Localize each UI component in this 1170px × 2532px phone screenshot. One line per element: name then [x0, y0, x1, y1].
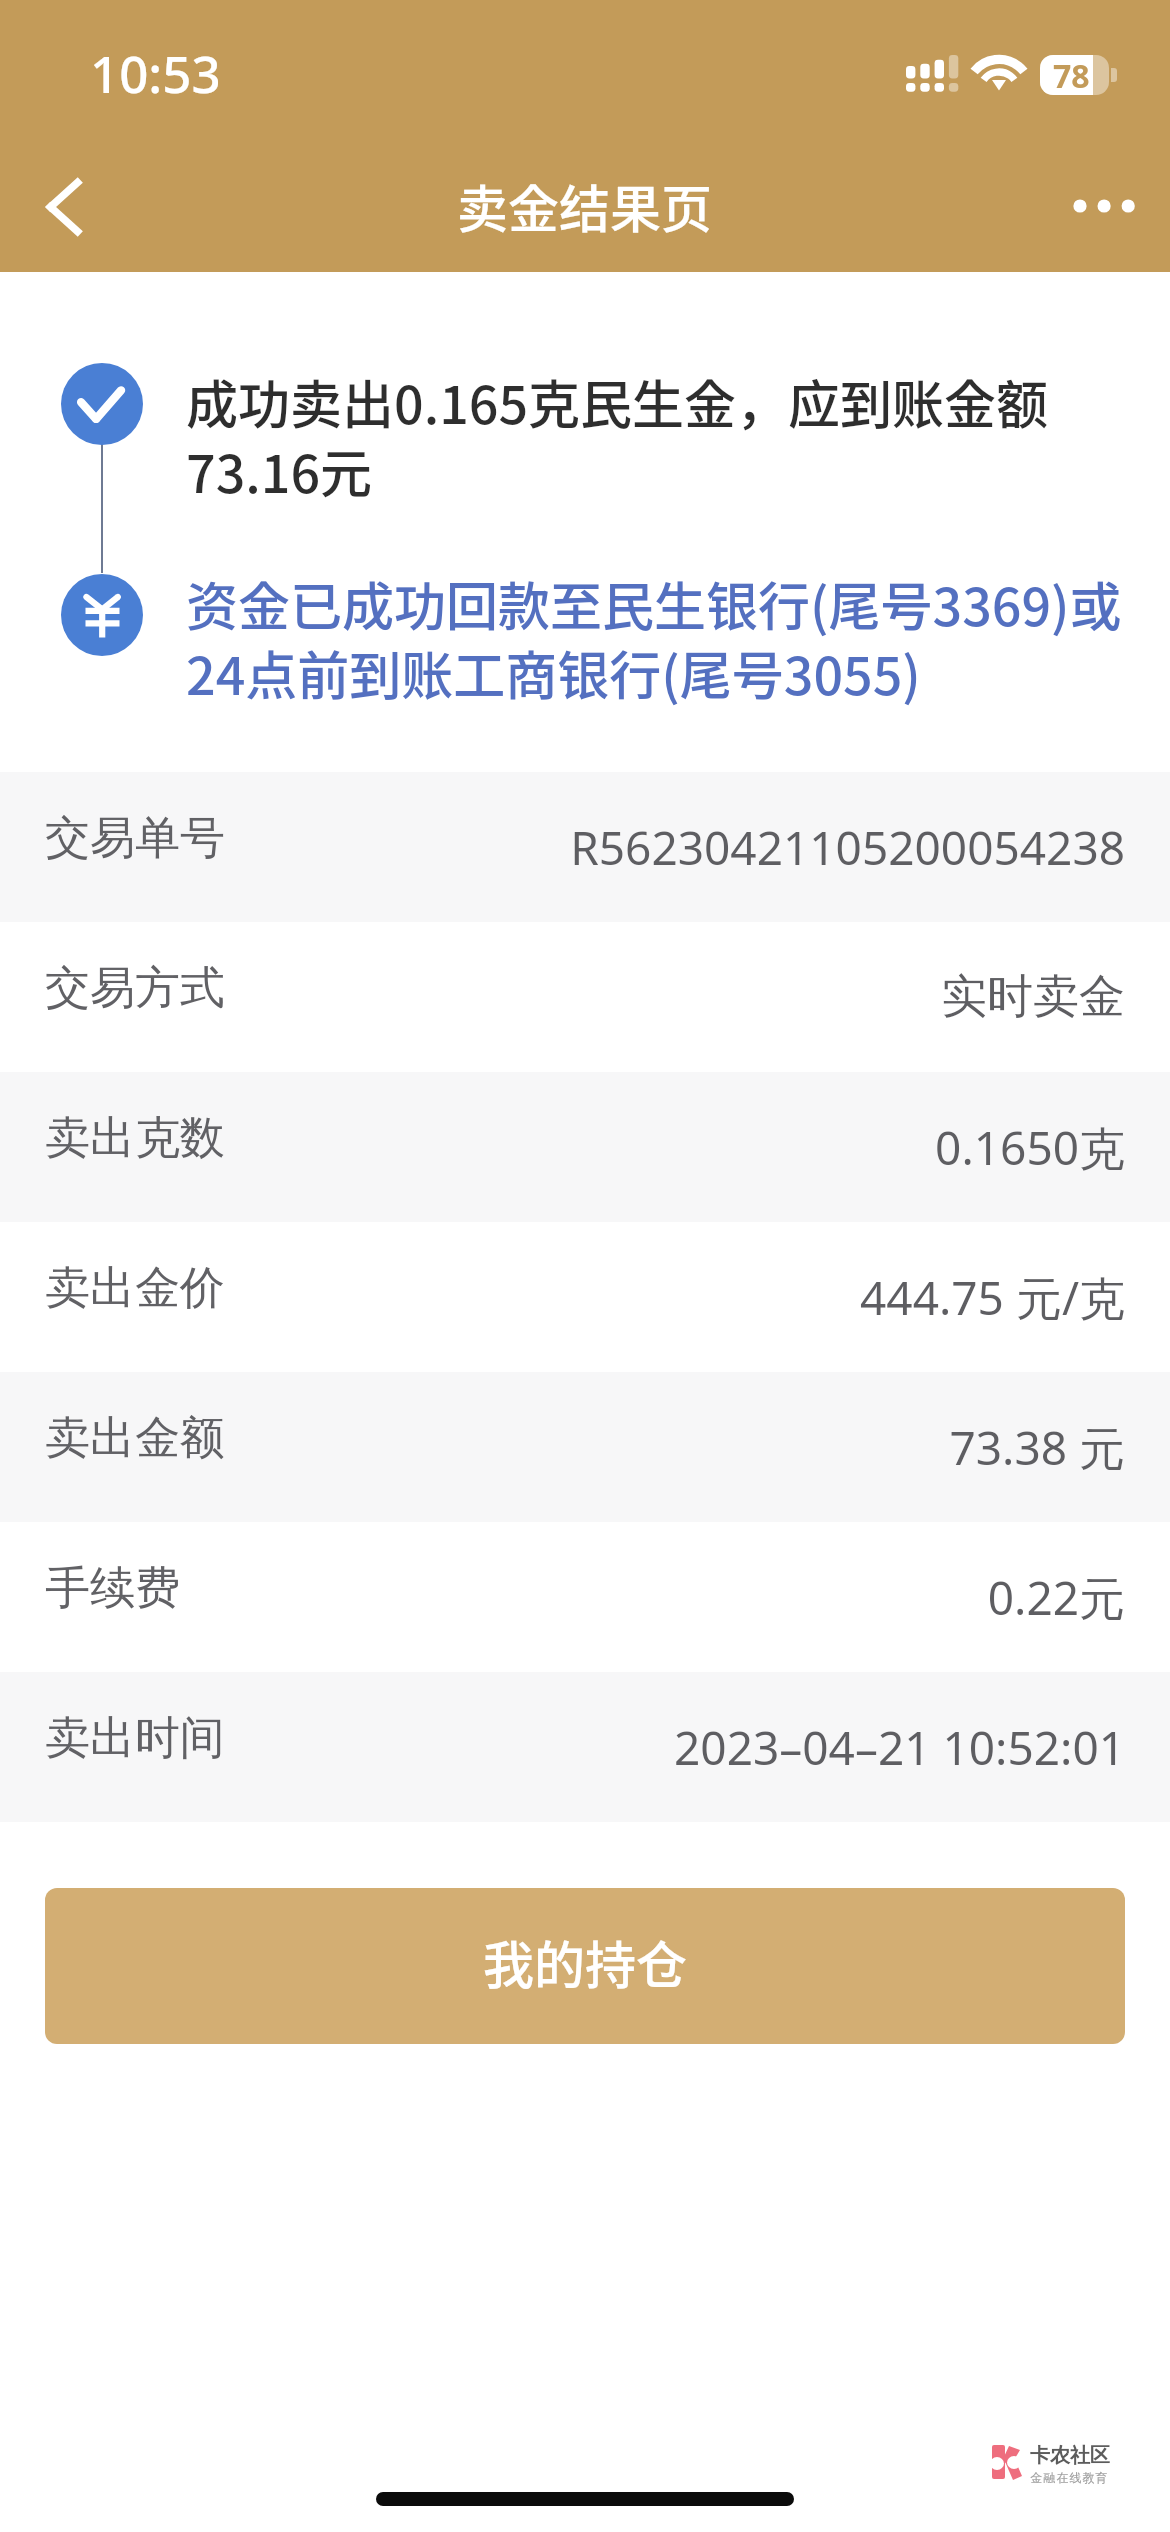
staticText: 交易单号	[45, 810, 225, 867]
staticText: 卖出克数	[45, 1110, 225, 1167]
staticText: 0.22元	[987, 1566, 1125, 1629]
staticText: 卖出金价	[45, 1260, 225, 1317]
staticText: 卖金结果页	[457, 169, 713, 243]
staticText: 卡农社区	[1030, 2443, 1110, 2468]
button[interactable]: 交易方式	[0, 922, 1170, 1072]
button[interactable]: 卖出克数	[0, 1072, 1170, 1222]
button[interactable]: 卖出金额	[0, 1372, 1170, 1522]
staticText: 444.75 元/克	[860, 1266, 1125, 1329]
button[interactable]: 交易单号	[0, 772, 1170, 922]
staticText: 78	[1053, 54, 1090, 98]
button[interactable]: More options	[1050, 165, 1155, 249]
staticText: 0.1650克	[935, 1116, 1125, 1179]
staticText: R56230421105200054238	[570, 816, 1125, 879]
staticText: 金融在线教育	[1030, 2470, 1108, 2485]
staticText: 手续费	[45, 1560, 180, 1617]
staticText: 2023–04–21 10:52:01	[674, 1716, 1125, 1779]
button[interactable]: Back	[18, 161, 110, 253]
staticText: 资金已成功回款至民生银行(尾号3369)或24点前到账工商银行(尾号3055)	[186, 566, 1126, 710]
staticText: 交易方式	[45, 960, 225, 1017]
other: Signal strength, Wi-Fi connected, batter…	[906, 55, 975, 99]
button[interactable]: 卖出金价	[0, 1222, 1170, 1372]
staticText: 10:53	[90, 38, 221, 107]
staticText: 卖出金额	[45, 1410, 225, 1467]
staticText: 我的持仓	[483, 1925, 688, 1999]
staticText: 成功卖出0.165克民生金，应到账金额73.16元	[186, 364, 1066, 508]
staticText: 实时卖金	[941, 968, 1125, 1026]
staticText: 卖出时间	[45, 1710, 225, 1767]
button[interactable]: 手续费	[0, 1522, 1170, 1672]
button[interactable]: 我的持仓	[45, 1888, 1125, 2044]
button[interactable]: 卖出时间	[0, 1672, 1170, 1822]
staticText: 73.38 元	[949, 1416, 1125, 1479]
